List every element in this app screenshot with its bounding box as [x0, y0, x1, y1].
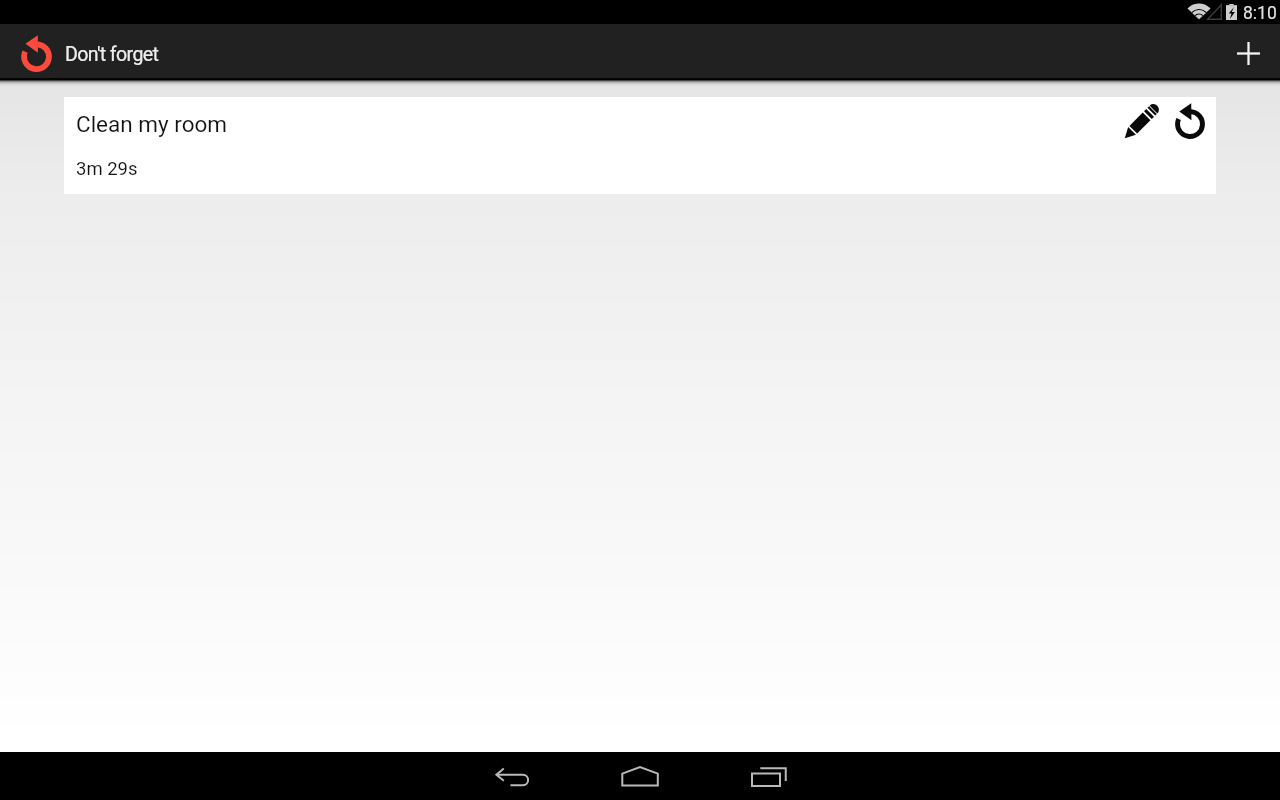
button[interactable]: Recents [704, 752, 832, 800]
staticText: Don't forget [65, 43, 159, 66]
button[interactable]: Reset timer [1166, 98, 1206, 138]
button[interactable]: Don't forget, app icon [8, 28, 56, 76]
staticText: Clean my room [76, 111, 228, 137]
button[interactable]: Clean my room [64, 97, 1216, 194]
button[interactable]: Home [576, 752, 704, 800]
button[interactable]: Edit [1118, 99, 1164, 145]
button[interactable]: Add reminder [1224, 29, 1272, 77]
button[interactable]: Back [448, 752, 576, 800]
staticText: 8:10 [1243, 3, 1277, 24]
staticText: 3m 29s [76, 158, 138, 180]
